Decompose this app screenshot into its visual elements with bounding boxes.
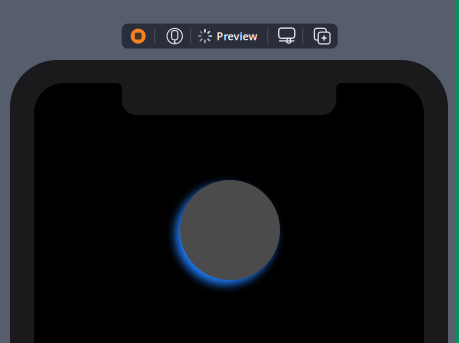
staticText: Preview [216, 29, 257, 43]
button[interactable]: Preview on device [268, 24, 302, 49]
button[interactable]: Select preview device [155, 24, 190, 49]
button[interactable]: Duplicate preview [303, 24, 337, 49]
button[interactable]: Stop preview [122, 24, 154, 49]
button[interactable]: Preview [191, 24, 267, 49]
